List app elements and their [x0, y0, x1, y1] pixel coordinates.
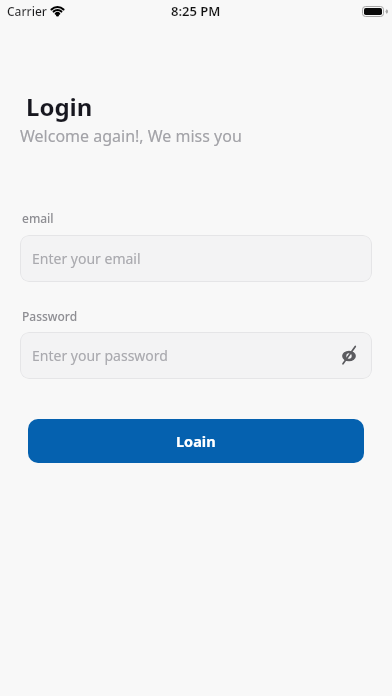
button[interactable]	[340, 347, 358, 365]
button[interactable]: Loain	[28, 419, 364, 463]
staticText: Enter your email	[32, 249, 141, 268]
staticText: Loain	[176, 431, 216, 451]
staticText: Login	[26, 90, 93, 123]
button[interactable]: Enter your password	[20, 332, 372, 379]
staticText: Welcome again!, We miss you	[20, 125, 242, 147]
staticText: email	[22, 210, 54, 226]
button[interactable]: Enter your email	[20, 235, 372, 282]
staticText: Enter your password	[32, 346, 168, 365]
staticText: 8:25 PM	[171, 2, 221, 20]
staticText: Password	[22, 308, 78, 324]
staticText: Carrier	[7, 3, 47, 19]
